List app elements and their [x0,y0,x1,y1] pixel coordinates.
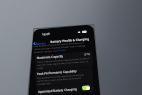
staticText: Battery [35,41,47,46]
staticText: Battery Health & Charging [50,37,89,44]
staticText: Peak Performance Capability [37,69,77,76]
button[interactable]: Learn more... [53,49,67,53]
staticText: Maximum Capacity [36,54,64,60]
staticText: Your battery is currently supporting nor… [37,73,92,86]
staticText: chemically ages, resulting in fewer hour… [34,44,86,51]
other: Back [33,42,36,45]
button[interactable]: Optimized Battery Charging toggle [82,85,90,91]
button[interactable]: Maximum Capacity [34,51,93,71]
button[interactable]: Optimized Battery Charging [36,83,94,95]
staticText: 16:49 [42,32,50,36]
button[interactable]: Peak Performance Capability [35,67,94,87]
staticText: between charges. [34,50,53,54]
staticText: This is a measure of battery capacity re… [37,57,91,70]
staticText: Your battery's maximum capacity decrease… [34,41,84,48]
staticText: Optimized Battery Charging [38,87,77,94]
staticText: 87% [84,52,91,56]
button[interactable]: Back [33,40,47,46]
